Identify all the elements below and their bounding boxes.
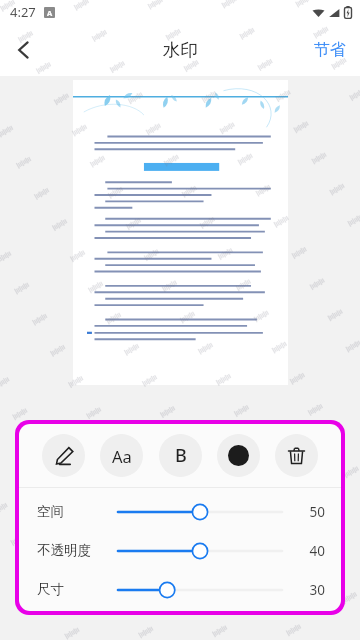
staticText: 空间 <box>37 503 64 520</box>
staticText: 50 <box>291 503 325 521</box>
staticText: 水印 <box>163 39 198 61</box>
button[interactable]: Delete <box>275 434 318 477</box>
button[interactable]: Color <box>217 434 260 477</box>
button[interactable] <box>109 497 291 527</box>
staticText: A <box>47 8 53 18</box>
staticText: 尺寸 <box>37 581 64 598</box>
button[interactable]: Back <box>0 26 48 74</box>
button[interactable]: 节省 <box>300 30 360 70</box>
staticText: B <box>175 443 187 468</box>
staticText: 不透明度 <box>37 542 91 559</box>
button[interactable]: Pen <box>42 434 85 477</box>
button[interactable] <box>109 575 291 605</box>
staticText: 4:27 <box>10 3 36 21</box>
staticText: 节省 <box>314 40 346 60</box>
button[interactable]: Bold <box>159 434 202 477</box>
staticText: 30 <box>291 581 325 599</box>
staticText: 40 <box>291 542 325 560</box>
button[interactable] <box>109 536 291 566</box>
button[interactable]: Text style <box>100 434 143 477</box>
staticText: Aa <box>112 445 132 467</box>
